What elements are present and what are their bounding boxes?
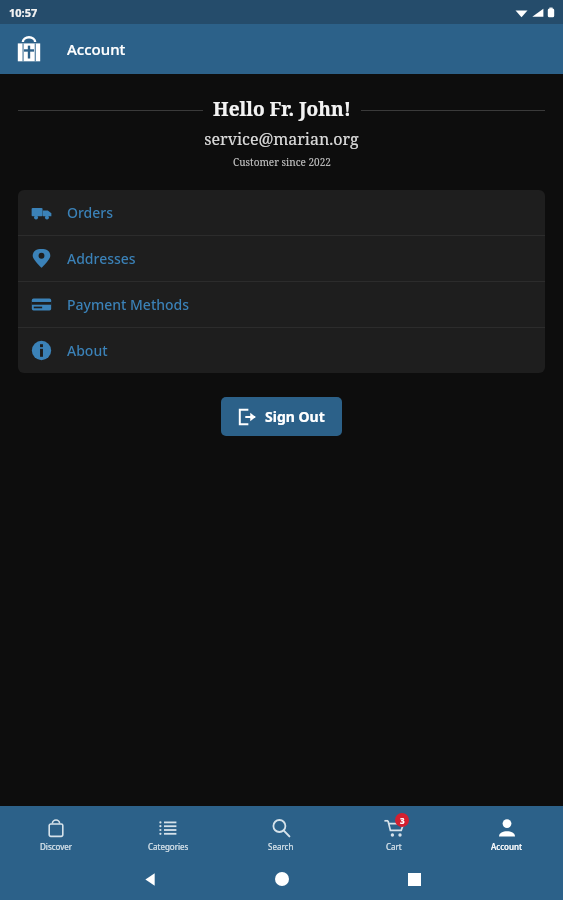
button[interactable]: Recent apps — [397, 862, 431, 896]
button[interactable]: Marian shop home — [12, 32, 46, 66]
staticText: Discover — [40, 841, 73, 852]
button[interactable]: Home — [265, 862, 299, 896]
button[interactable]: Discover — [0, 812, 112, 852]
button[interactable]: Search — [224, 812, 337, 852]
button[interactable]: 3 — [337, 812, 450, 852]
staticText: 3 — [400, 815, 405, 826]
staticText: Payment Methods — [67, 295, 190, 314]
staticText: Customer since 2022 — [233, 155, 331, 169]
button[interactable]: Orders — [18, 190, 545, 235]
staticText: Cart — [386, 841, 402, 852]
button[interactable]: Sign Out — [221, 397, 342, 436]
staticText: Orders — [67, 203, 114, 222]
button[interactable]: Payment Methods — [18, 282, 545, 327]
staticText: Categories — [148, 841, 189, 852]
staticText: service@marian.org — [204, 128, 359, 150]
button[interactable]: Account — [450, 812, 563, 852]
button[interactable]: Categories — [112, 812, 224, 852]
button[interactable]: About — [18, 328, 545, 373]
staticText: Account — [67, 39, 126, 59]
staticText: Hello Fr. John! — [213, 96, 351, 122]
staticText: 10:57 — [9, 5, 38, 20]
button[interactable]: Back — [133, 862, 167, 896]
staticText: Sign Out — [265, 407, 325, 426]
staticText: Search — [268, 841, 294, 852]
staticText: Account — [491, 841, 523, 852]
button[interactable]: Addresses — [18, 236, 545, 281]
staticText: About — [67, 341, 108, 360]
staticText: Addresses — [67, 249, 136, 268]
